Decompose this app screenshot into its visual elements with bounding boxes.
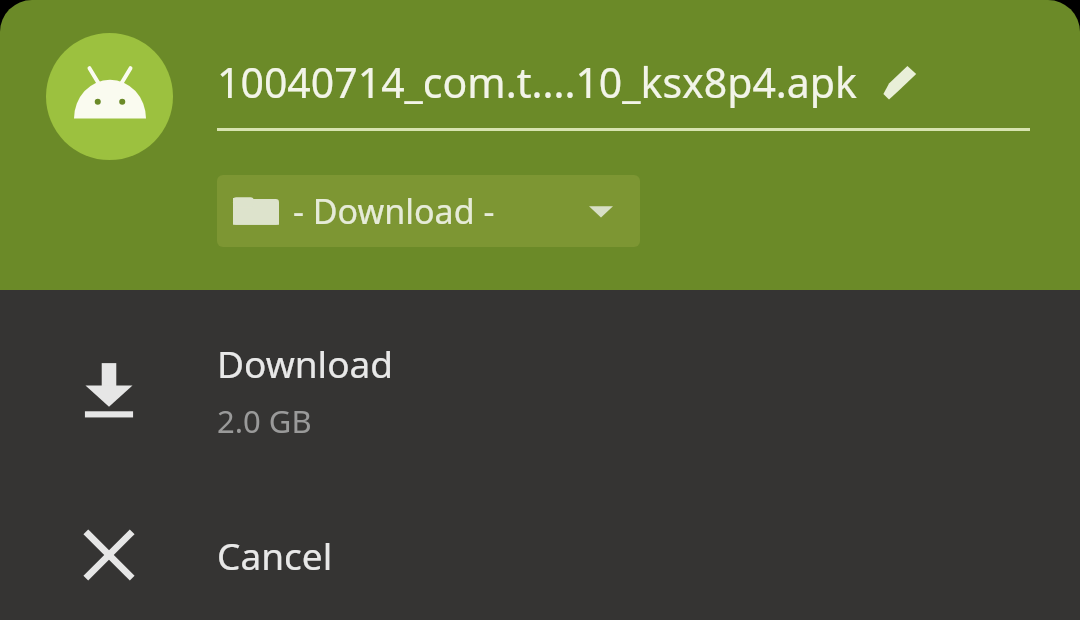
button[interactable]: 10040714_com.t....10_ksx8p4.apk: [217, 48, 1030, 116]
staticText: 2.0 GB: [217, 400, 312, 442]
other: App icon: [46, 33, 173, 160]
staticText: 10040714_com.t....10_ksx8p4.apk: [217, 54, 857, 110]
staticText: - Download -: [293, 188, 495, 234]
button[interactable]: Cancel: [0, 490, 1080, 620]
button[interactable]: - Download -: [217, 175, 640, 247]
button[interactable]: Download: [0, 310, 1080, 470]
staticText: Download: [217, 338, 394, 388]
other: Edit name: [879, 60, 923, 104]
staticText: Cancel: [217, 530, 333, 580]
